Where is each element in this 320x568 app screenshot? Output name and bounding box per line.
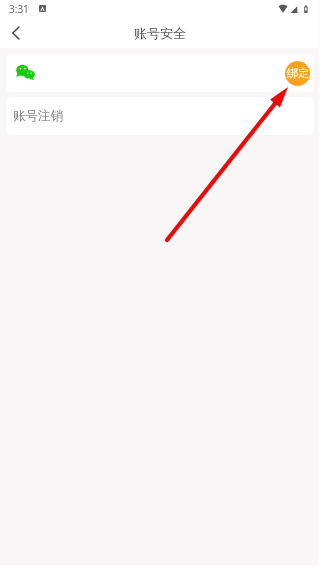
- button[interactable]: Back: [2, 20, 28, 46]
- button[interactable]: 绑定: [6, 54, 314, 92]
- button[interactable]: 绑定: [285, 61, 310, 86]
- staticText: 账号注销: [13, 108, 63, 124]
- staticText: 3:31: [9, 2, 29, 16]
- staticText: 绑定: [287, 66, 309, 80]
- button[interactable]: 账号注销: [6, 97, 314, 135]
- staticText: 账号安全: [134, 25, 186, 41]
